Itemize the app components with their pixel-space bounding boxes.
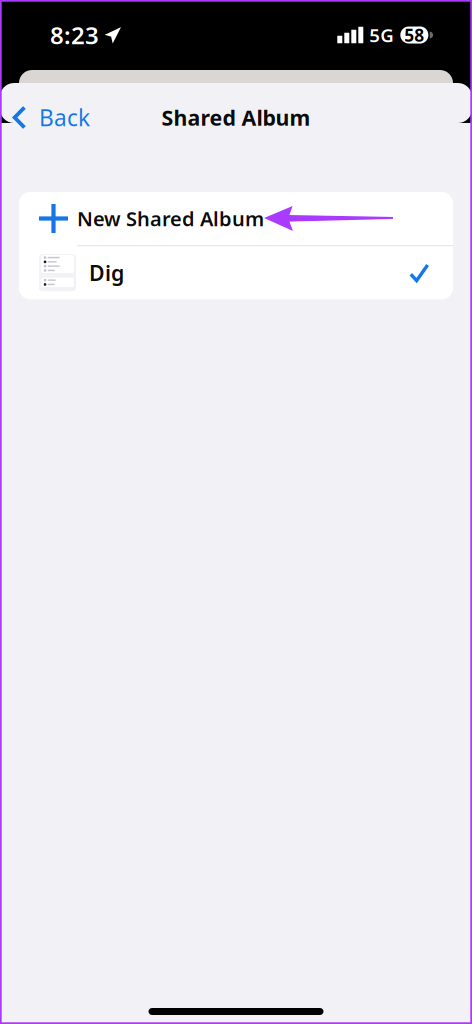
button[interactable]: Back (0, 92, 102, 142)
staticText: 8:23 (50, 19, 99, 51)
button[interactable]: New Shared Album (19, 192, 453, 245)
staticText: Back (39, 102, 90, 132)
staticText: 58 (404, 23, 424, 46)
staticText: New Shared Album (77, 205, 264, 232)
staticText: 5G (369, 23, 394, 47)
button[interactable]: Dig (19, 246, 453, 299)
staticText: Dig (89, 258, 124, 287)
staticText: Shared Album (161, 103, 310, 132)
